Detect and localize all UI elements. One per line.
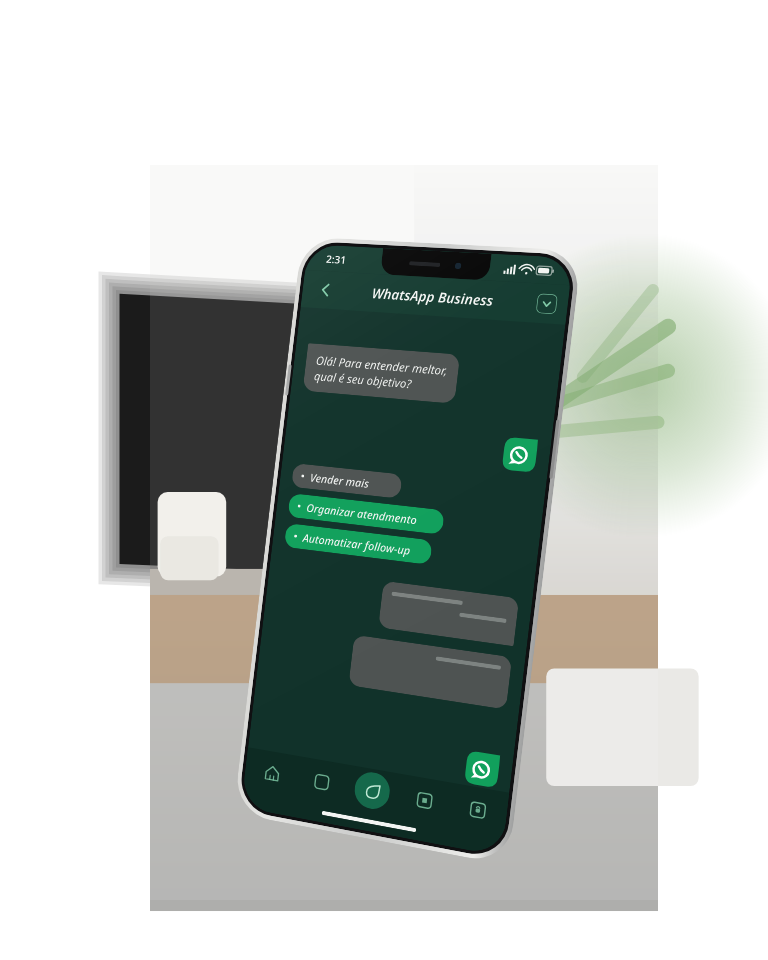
button[interactable]: Automatizar follow-up: [284, 523, 433, 565]
button[interactable]: WhatsApp: [502, 437, 538, 473]
button[interactable]: [348, 635, 512, 710]
button[interactable]: Back: [309, 273, 342, 306]
button[interactable]: Olá! Para entender meltor, qual é seu ob…: [302, 343, 460, 404]
staticText: Olá! Para entender meltor, qual é seu ob…: [313, 352, 449, 394]
button[interactable]: Vender mais: [291, 463, 403, 499]
button[interactable]: More options: [536, 293, 558, 314]
staticText: Vender mais: [309, 470, 370, 491]
button[interactable]: Home: [253, 752, 291, 793]
button[interactable]: WhatsApp: [464, 750, 500, 788]
staticText: 2:31: [325, 251, 347, 267]
button[interactable]: Profile: [457, 788, 498, 831]
button[interactable]: Status: [353, 769, 392, 812]
button[interactable]: [378, 581, 519, 646]
button[interactable]: Organizar atendmento: [287, 493, 445, 535]
staticText: Automatizar follow-up: [302, 530, 411, 558]
button[interactable]: Catalog: [404, 778, 444, 821]
button[interactable]: Chats: [302, 761, 341, 802]
staticText: Organizar atendmento: [306, 500, 418, 528]
staticText: WhatsApp Business: [370, 283, 495, 310]
